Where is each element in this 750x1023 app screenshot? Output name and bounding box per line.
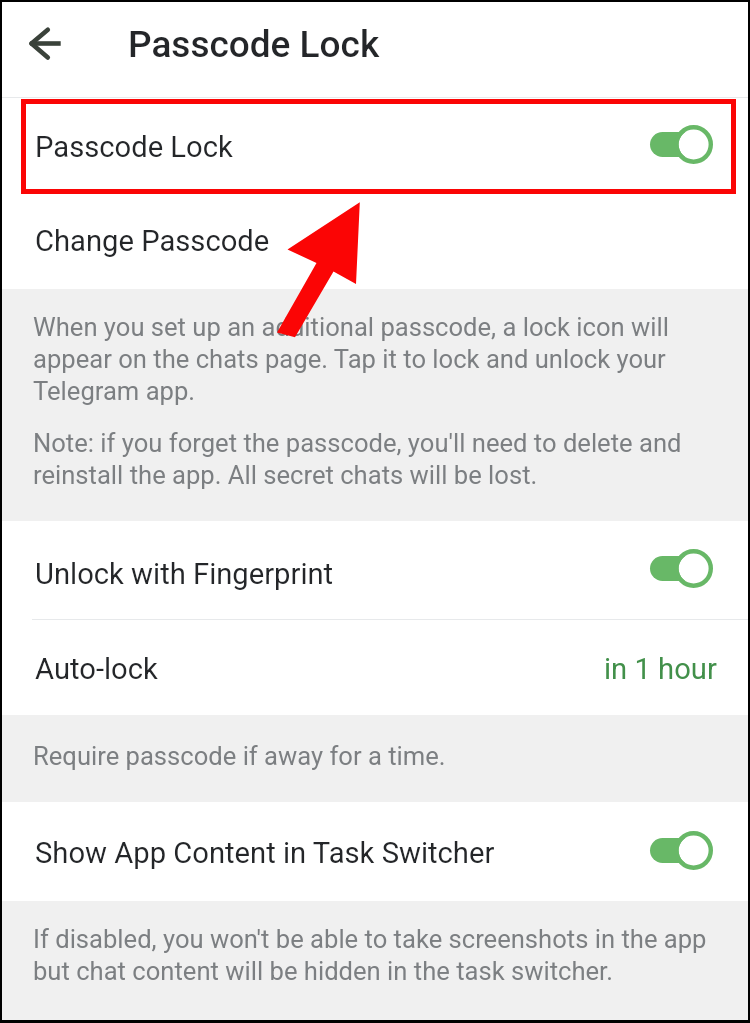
staticText: Require passcode if away for a time. <box>33 740 446 772</box>
button[interactable]: Show App Content in Task Switcher <box>2 802 748 901</box>
button[interactable]: Auto-lock <box>2 620 748 715</box>
staticText: in 1 hour <box>604 652 717 686</box>
staticText: Show App Content in Task Switcher <box>35 836 495 870</box>
button[interactable]: Unlock with Fingerprint <box>2 521 748 619</box>
staticText: Unlock with Fingerprint <box>35 557 334 591</box>
staticText: If disabled, you won't be able to take s… <box>33 923 720 987</box>
staticText: Passcode Lock <box>35 130 233 164</box>
staticText: Auto-lock <box>35 652 158 686</box>
staticText: When you set up an additional passcode, … <box>33 311 720 407</box>
button[interactable]: Change Passcode <box>2 194 748 289</box>
staticText: Passcode Lock <box>128 23 380 66</box>
staticText: Note: if you forget the passcode, you'll… <box>33 427 720 491</box>
button[interactable]: Passcode Lock <box>2 98 748 194</box>
button[interactable]: Navigate back <box>2 2 78 97</box>
staticText: Change Passcode <box>35 224 270 258</box>
